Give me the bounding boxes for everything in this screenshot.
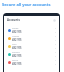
button[interactable]: Dropbox	[4, 50, 59, 58]
staticText: Secure all your accounts	[2, 2, 51, 7]
button[interactable]: Github	[4, 58, 59, 66]
staticText: 482 915	[12, 62, 22, 66]
staticText: Slack	[12, 43, 17, 46]
staticText: 482 915	[12, 46, 22, 50]
button[interactable]: Slack	[4, 42, 59, 50]
staticText: Amazon	[12, 35, 20, 38]
staticText: 482 915	[12, 54, 22, 58]
staticText: Dropbox	[12, 51, 20, 54]
staticText: Google	[12, 27, 19, 30]
staticText: Github	[12, 59, 19, 62]
button[interactable]: Add account	[53, 19, 56, 22]
staticText: 482 915	[12, 38, 22, 42]
staticText: 482 915	[12, 30, 22, 34]
staticText: Accounts	[7, 18, 20, 22]
button[interactable]: Amazon	[4, 34, 59, 42]
button[interactable]: Google	[4, 26, 59, 34]
